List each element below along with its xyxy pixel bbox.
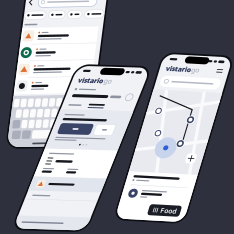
button[interactable] — [27, 12, 48, 20]
button[interactable]: Key — [83, 131, 94, 140]
button[interactable] — [51, 12, 67, 20]
button[interactable]: Key — [59, 121, 65, 129]
button[interactable] — [22, 28, 102, 45]
button[interactable]: Key — [56, 99, 61, 108]
button[interactable]: Key — [31, 110, 36, 118]
button[interactable]: Key — [91, 99, 97, 108]
staticText: go — [135, 72, 143, 81]
button[interactable]: Key — [38, 121, 43, 129]
button[interactable]: Key — [77, 99, 82, 108]
button[interactable]: Key — [80, 110, 86, 118]
button[interactable]: Key — [45, 110, 51, 118]
button[interactable] — [103, 173, 176, 187]
button[interactable]: Key — [73, 110, 79, 118]
button[interactable]: Key — [59, 110, 65, 118]
button[interactable]: Key — [88, 121, 95, 129]
staticText: vistario — [183, 54, 208, 62]
button[interactable] — [22, 45, 102, 62]
button[interactable]: Key — [34, 99, 40, 108]
button[interactable] — [22, 79, 102, 95]
button[interactable]: Key — [41, 99, 47, 108]
button[interactable]: Key — [38, 110, 43, 118]
button[interactable] — [109, 120, 142, 131]
button[interactable]: Key — [30, 131, 38, 140]
staticText: vistario — [109, 72, 134, 81]
button[interactable]: Key — [29, 121, 36, 129]
button[interactable]: Key — [40, 131, 48, 140]
button[interactable]: Key — [70, 99, 75, 108]
button[interactable] — [87, 12, 106, 20]
button[interactable]: Key — [80, 121, 86, 129]
button[interactable]: Key — [66, 110, 72, 118]
button[interactable]: Key — [52, 121, 58, 129]
button[interactable]: Key — [84, 99, 90, 108]
button[interactable]: Key — [66, 121, 72, 129]
button[interactable]: Key — [52, 110, 58, 118]
button[interactable]: Key — [73, 121, 79, 129]
button[interactable]: Key — [50, 131, 82, 140]
button[interactable]: Key — [48, 99, 54, 108]
button[interactable]: Key — [45, 121, 51, 129]
button[interactable] — [145, 120, 164, 131]
button[interactable]: Key — [27, 99, 33, 108]
staticText: go — [209, 54, 217, 62]
button[interactable] — [70, 12, 84, 20]
button[interactable]: Key — [63, 99, 68, 108]
button[interactable]: Back — [27, 0, 36, 8]
button[interactable] — [22, 62, 102, 79]
